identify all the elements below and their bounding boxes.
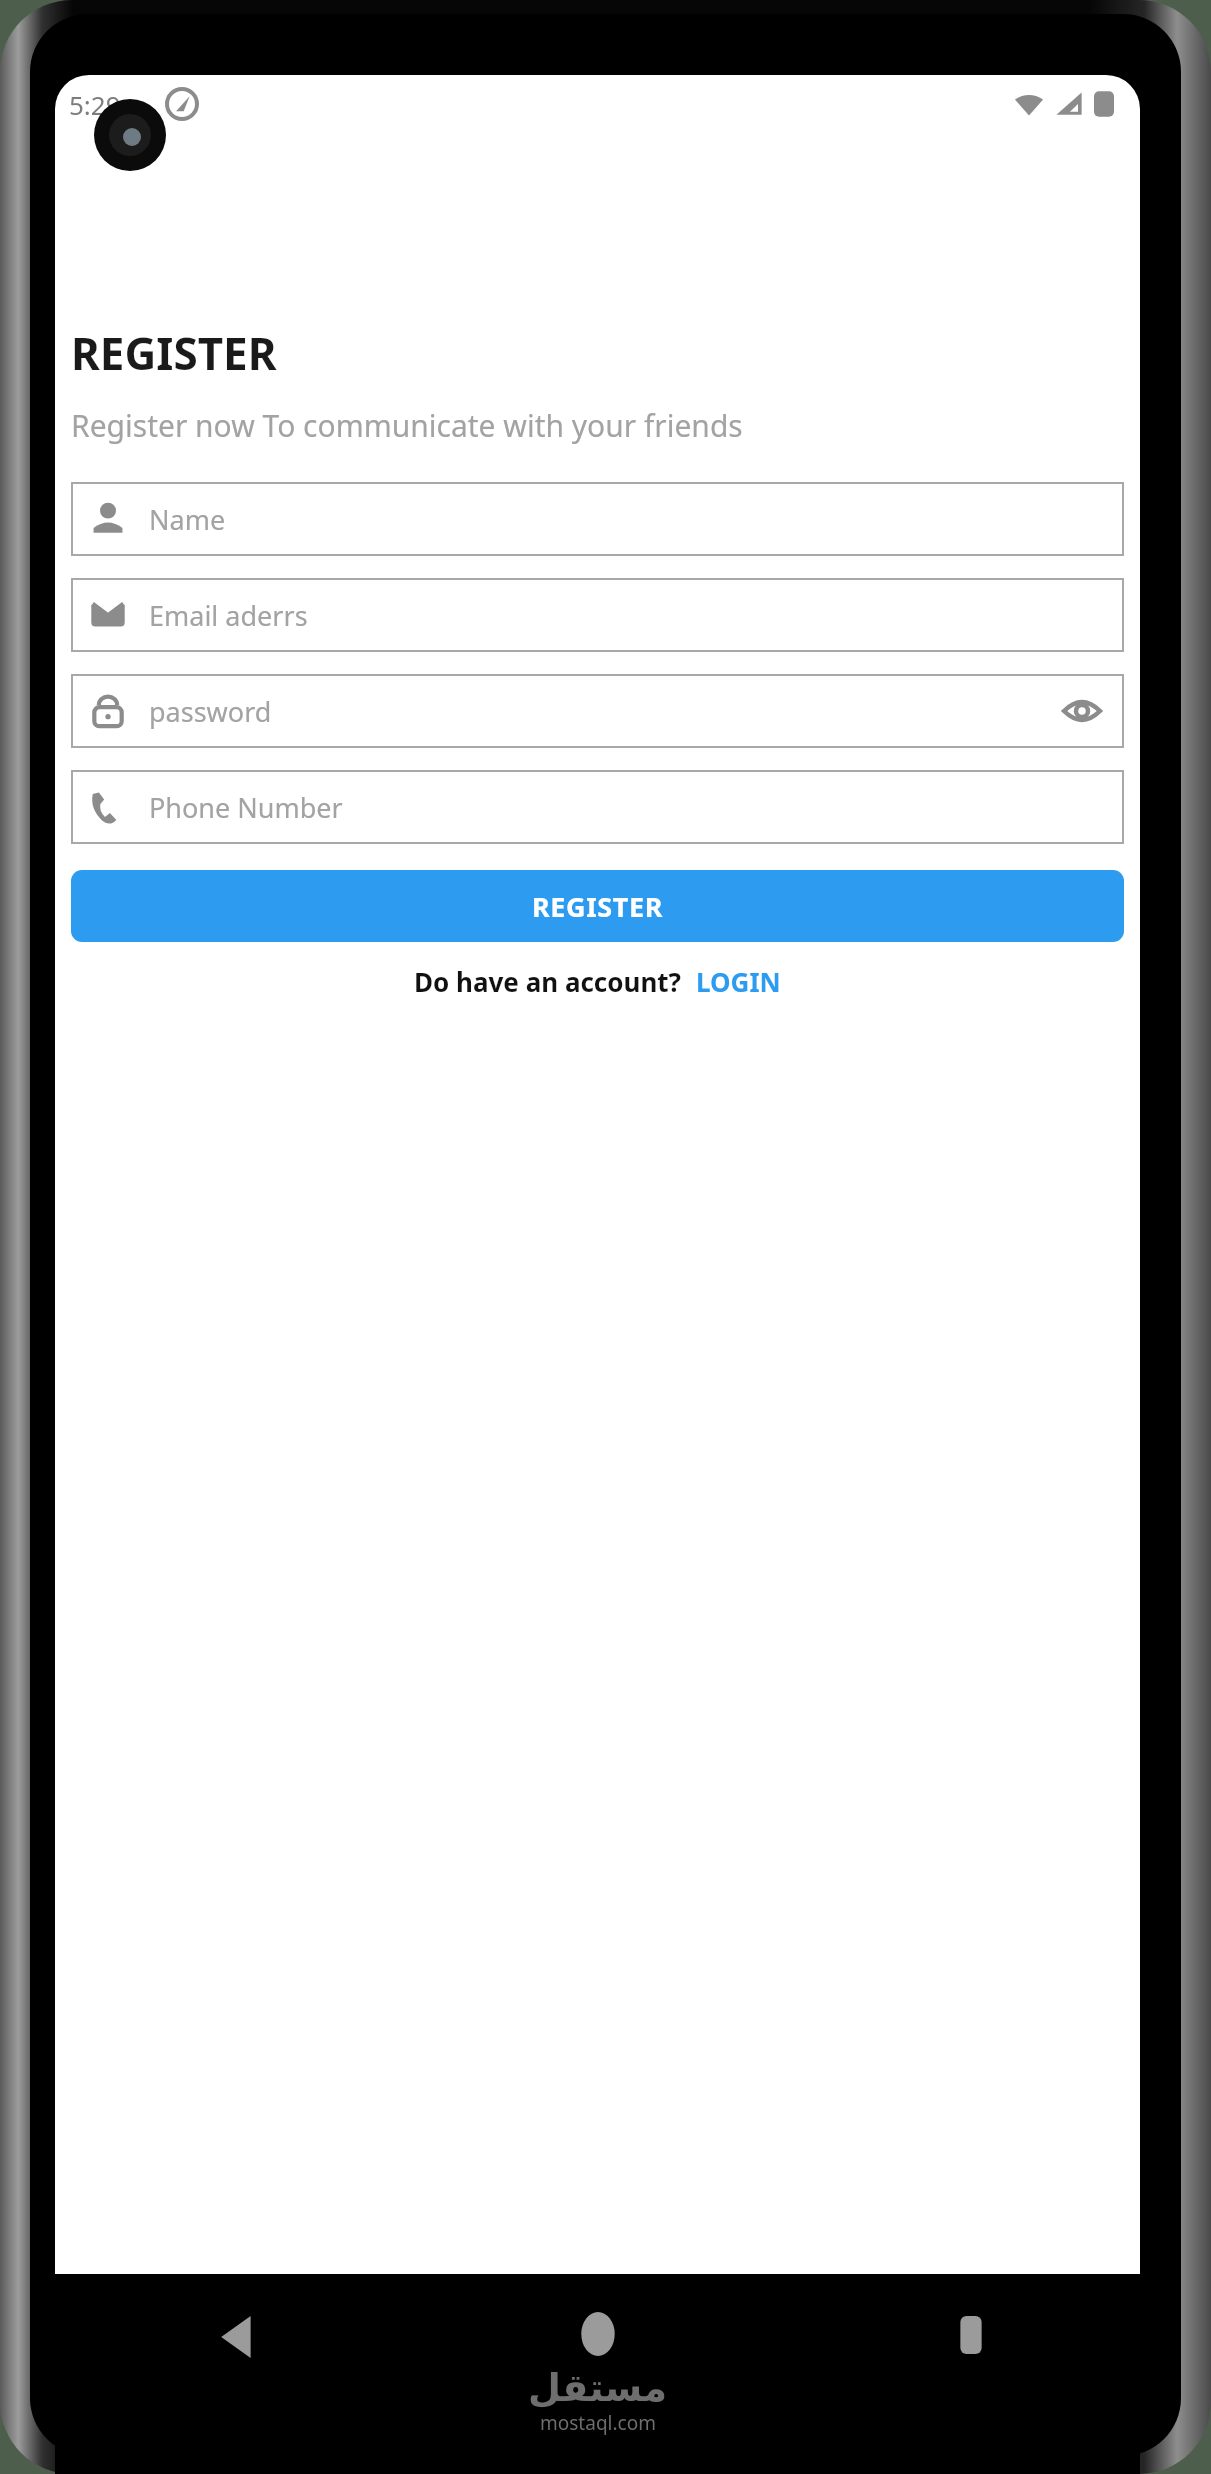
staticText: LOGIN	[696, 964, 781, 999]
button[interactable]: REGISTER	[71, 870, 1124, 942]
button[interactable]: Show password	[1062, 691, 1102, 731]
staticText: REGISTER	[71, 323, 277, 383]
button[interactable]: Phone Number	[71, 770, 1124, 844]
button[interactable]: password	[71, 674, 1124, 748]
button[interactable]: Back	[217, 2316, 259, 2358]
staticText: Phone Number	[149, 789, 343, 826]
button[interactable]: Name	[71, 482, 1124, 556]
staticText: Register now To communicate with your fr…	[71, 405, 743, 446]
staticText: Do have an account?	[414, 964, 682, 999]
button[interactable]: Email aderrs	[71, 578, 1124, 652]
staticText: REGISTER	[532, 888, 663, 925]
button[interactable]: Home	[576, 2312, 620, 2356]
staticText: مستقل	[528, 2366, 667, 2410]
staticText: 5:29	[69, 87, 121, 122]
staticText: password	[149, 693, 272, 730]
staticText: Name	[149, 501, 226, 538]
staticText: Email aderrs	[149, 597, 308, 634]
button[interactable]: LOGIN	[696, 964, 781, 999]
button[interactable]: Recents	[952, 2316, 990, 2354]
staticText: mostaql.com	[540, 2410, 656, 2436]
